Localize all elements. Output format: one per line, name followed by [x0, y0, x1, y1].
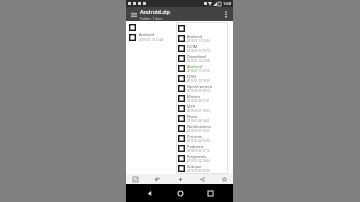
staticText: Zotique	[187, 164, 202, 169]
staticText: 2019-01-09 18:12	[187, 89, 210, 93]
staticText: Notifications	[187, 124, 211, 129]
staticText: 1:58	[223, 1, 231, 6]
button[interactable]	[178, 23, 226, 33]
button[interactable]: Sort	[152, 174, 162, 184]
button[interactable]	[129, 22, 230, 32]
button[interactable]: Recents	[202, 185, 218, 201]
staticText: Android	[187, 34, 202, 39]
staticText: Android	[187, 64, 202, 69]
button[interactable]: EDM	[178, 73, 226, 83]
staticText: 2019-01-13 12:44	[139, 38, 164, 42]
staticText: Download	[187, 54, 207, 59]
staticText: Android	[139, 32, 154, 37]
button[interactable]: Select all	[130, 174, 140, 184]
staticText: 2019-01-03 11:12	[187, 149, 210, 153]
button[interactable]: Notifications	[178, 123, 226, 133]
staticText: 2019-01-13 11:02	[187, 49, 210, 53]
staticText: 2019-01-01 09:20	[187, 169, 210, 173]
staticText: Music	[187, 114, 198, 119]
staticText: 2019-01-04 12:30	[187, 139, 210, 143]
button[interactable]: MTP	[178, 103, 226, 113]
button[interactable]: Share	[197, 174, 207, 184]
staticText: DCIM	[187, 44, 198, 49]
staticText: Pictures	[187, 134, 203, 139]
staticText: Ringtones	[187, 154, 206, 159]
staticText: 2019-01-05 13:55	[187, 129, 210, 133]
button[interactable]: Star	[219, 174, 229, 184]
button[interactable]: Pictures	[178, 133, 226, 143]
button[interactable]: Ringtones	[178, 153, 226, 163]
button[interactable]: OpenCamera	[178, 83, 226, 93]
staticText: OpenCamera	[187, 84, 212, 89]
button[interactable]: Download	[178, 53, 226, 63]
staticText: Movies	[187, 94, 201, 99]
button[interactable]: Android	[129, 32, 230, 42]
button[interactable]: Android	[178, 33, 226, 43]
staticText: Android.zip	[140, 8, 170, 15]
button[interactable]: Android	[178, 63, 226, 73]
button[interactable]: Zotique	[178, 163, 226, 173]
staticText: EDM	[187, 74, 196, 79]
button[interactable]: Movies	[178, 93, 226, 103]
staticText: Folder: 1 item	[140, 16, 163, 21]
staticText: 2019-01-07 15:03	[187, 109, 210, 113]
staticText: 2019-01-12 22:08	[187, 59, 210, 63]
staticText: 2019-01-10 19:30	[187, 79, 210, 83]
button[interactable]: Music	[178, 113, 226, 123]
button[interactable]: Podcasts	[178, 143, 226, 153]
button[interactable]: More options	[221, 10, 230, 19]
button[interactable]: Home	[172, 185, 188, 201]
button[interactable]: DCIM	[178, 43, 226, 53]
button[interactable]: Add	[175, 174, 185, 184]
button[interactable]: Navigate up	[129, 10, 138, 19]
staticText: 2019-01-06 14:21	[187, 119, 210, 123]
staticText: 2019-01-08 17:41	[187, 99, 210, 103]
staticText: Podcasts	[187, 144, 204, 149]
button[interactable]: Back	[141, 185, 157, 201]
staticText: 2019-01-02 10:44	[187, 159, 210, 163]
staticText: 2019-01-11 21:50	[187, 69, 210, 73]
staticText: 2019-01-13 12:44	[187, 39, 210, 43]
staticText: MTP	[187, 104, 196, 109]
